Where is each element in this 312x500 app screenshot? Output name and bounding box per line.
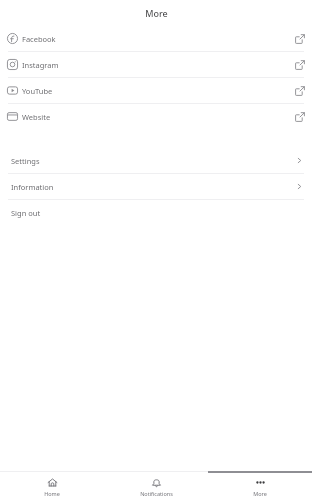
other: Open Instagram: [295, 60, 305, 70]
button[interactable]: Home: [0, 477, 104, 497]
staticText: Settings: [11, 156, 40, 166]
staticText: Notifications: [140, 490, 173, 497]
button[interactable]: Instagram: [0, 52, 312, 77]
button[interactable]: Notifications: [104, 477, 208, 497]
button[interactable]: Sign out: [0, 200, 312, 225]
button[interactable]: Facebook: [0, 26, 312, 51]
staticText: Instagram: [22, 60, 59, 70]
button[interactable]: More: [208, 477, 312, 497]
other: Open Website: [295, 112, 305, 122]
staticText: Facebook: [22, 34, 56, 44]
staticText: Home: [44, 490, 60, 497]
button[interactable]: YouTube: [0, 78, 312, 103]
other: Open Facebook: [295, 34, 305, 44]
staticText: More: [145, 7, 168, 19]
staticText: Website: [22, 112, 51, 122]
other: Open YouTube: [295, 86, 305, 96]
staticText: Sign out: [11, 208, 41, 218]
staticText: More: [253, 490, 267, 497]
staticText: Information: [11, 182, 54, 192]
button[interactable]: Settings: [0, 148, 312, 173]
staticText: YouTube: [22, 86, 53, 96]
button[interactable]: Information: [0, 174, 312, 199]
button[interactable]: Website: [0, 104, 312, 129]
